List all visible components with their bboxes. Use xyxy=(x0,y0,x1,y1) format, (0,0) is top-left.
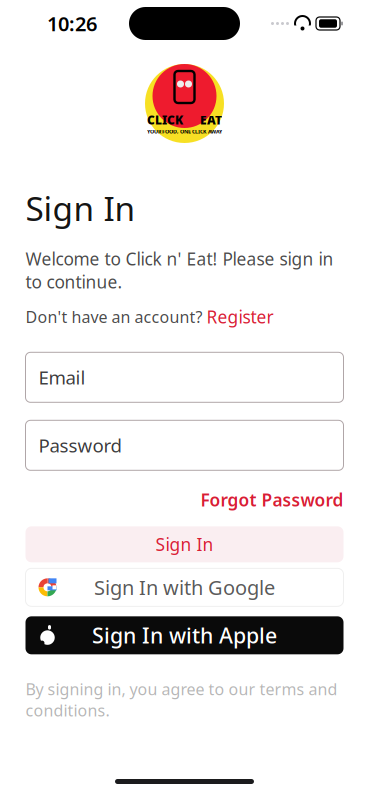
button[interactable]: Password xyxy=(25,420,343,470)
staticText: EAT xyxy=(200,112,222,128)
staticText: N' xyxy=(184,112,198,128)
staticText: Sign In xyxy=(25,186,135,230)
staticText: Password xyxy=(38,433,121,458)
button[interactable]: Email xyxy=(25,352,343,402)
staticText: Welcome to Click n' Eat! Please sign in … xyxy=(25,247,333,293)
button[interactable]: Sign In xyxy=(25,526,343,562)
staticText: Email xyxy=(38,365,85,390)
button[interactable]: Sign In with Google xyxy=(25,568,343,606)
staticText: CLICK xyxy=(147,112,183,128)
staticText: 10:26 xyxy=(47,10,97,37)
staticText: Don't have an account? xyxy=(25,306,202,327)
staticText: Sign In xyxy=(155,533,213,556)
staticText: Sign In with Apple xyxy=(92,621,277,649)
staticText: Sign In with Google xyxy=(94,574,275,601)
staticText: Forgot Password xyxy=(200,488,343,511)
staticText: Register xyxy=(206,305,273,328)
button[interactable]: Register xyxy=(206,305,273,328)
button[interactable]: Sign In with Apple xyxy=(25,616,343,654)
button[interactable]: Forgot Password xyxy=(200,488,343,511)
staticText: By signing in, you agree to our terms an… xyxy=(25,678,337,721)
staticText: YOUR FOOD, ONE CLICK AWAY xyxy=(147,128,222,135)
